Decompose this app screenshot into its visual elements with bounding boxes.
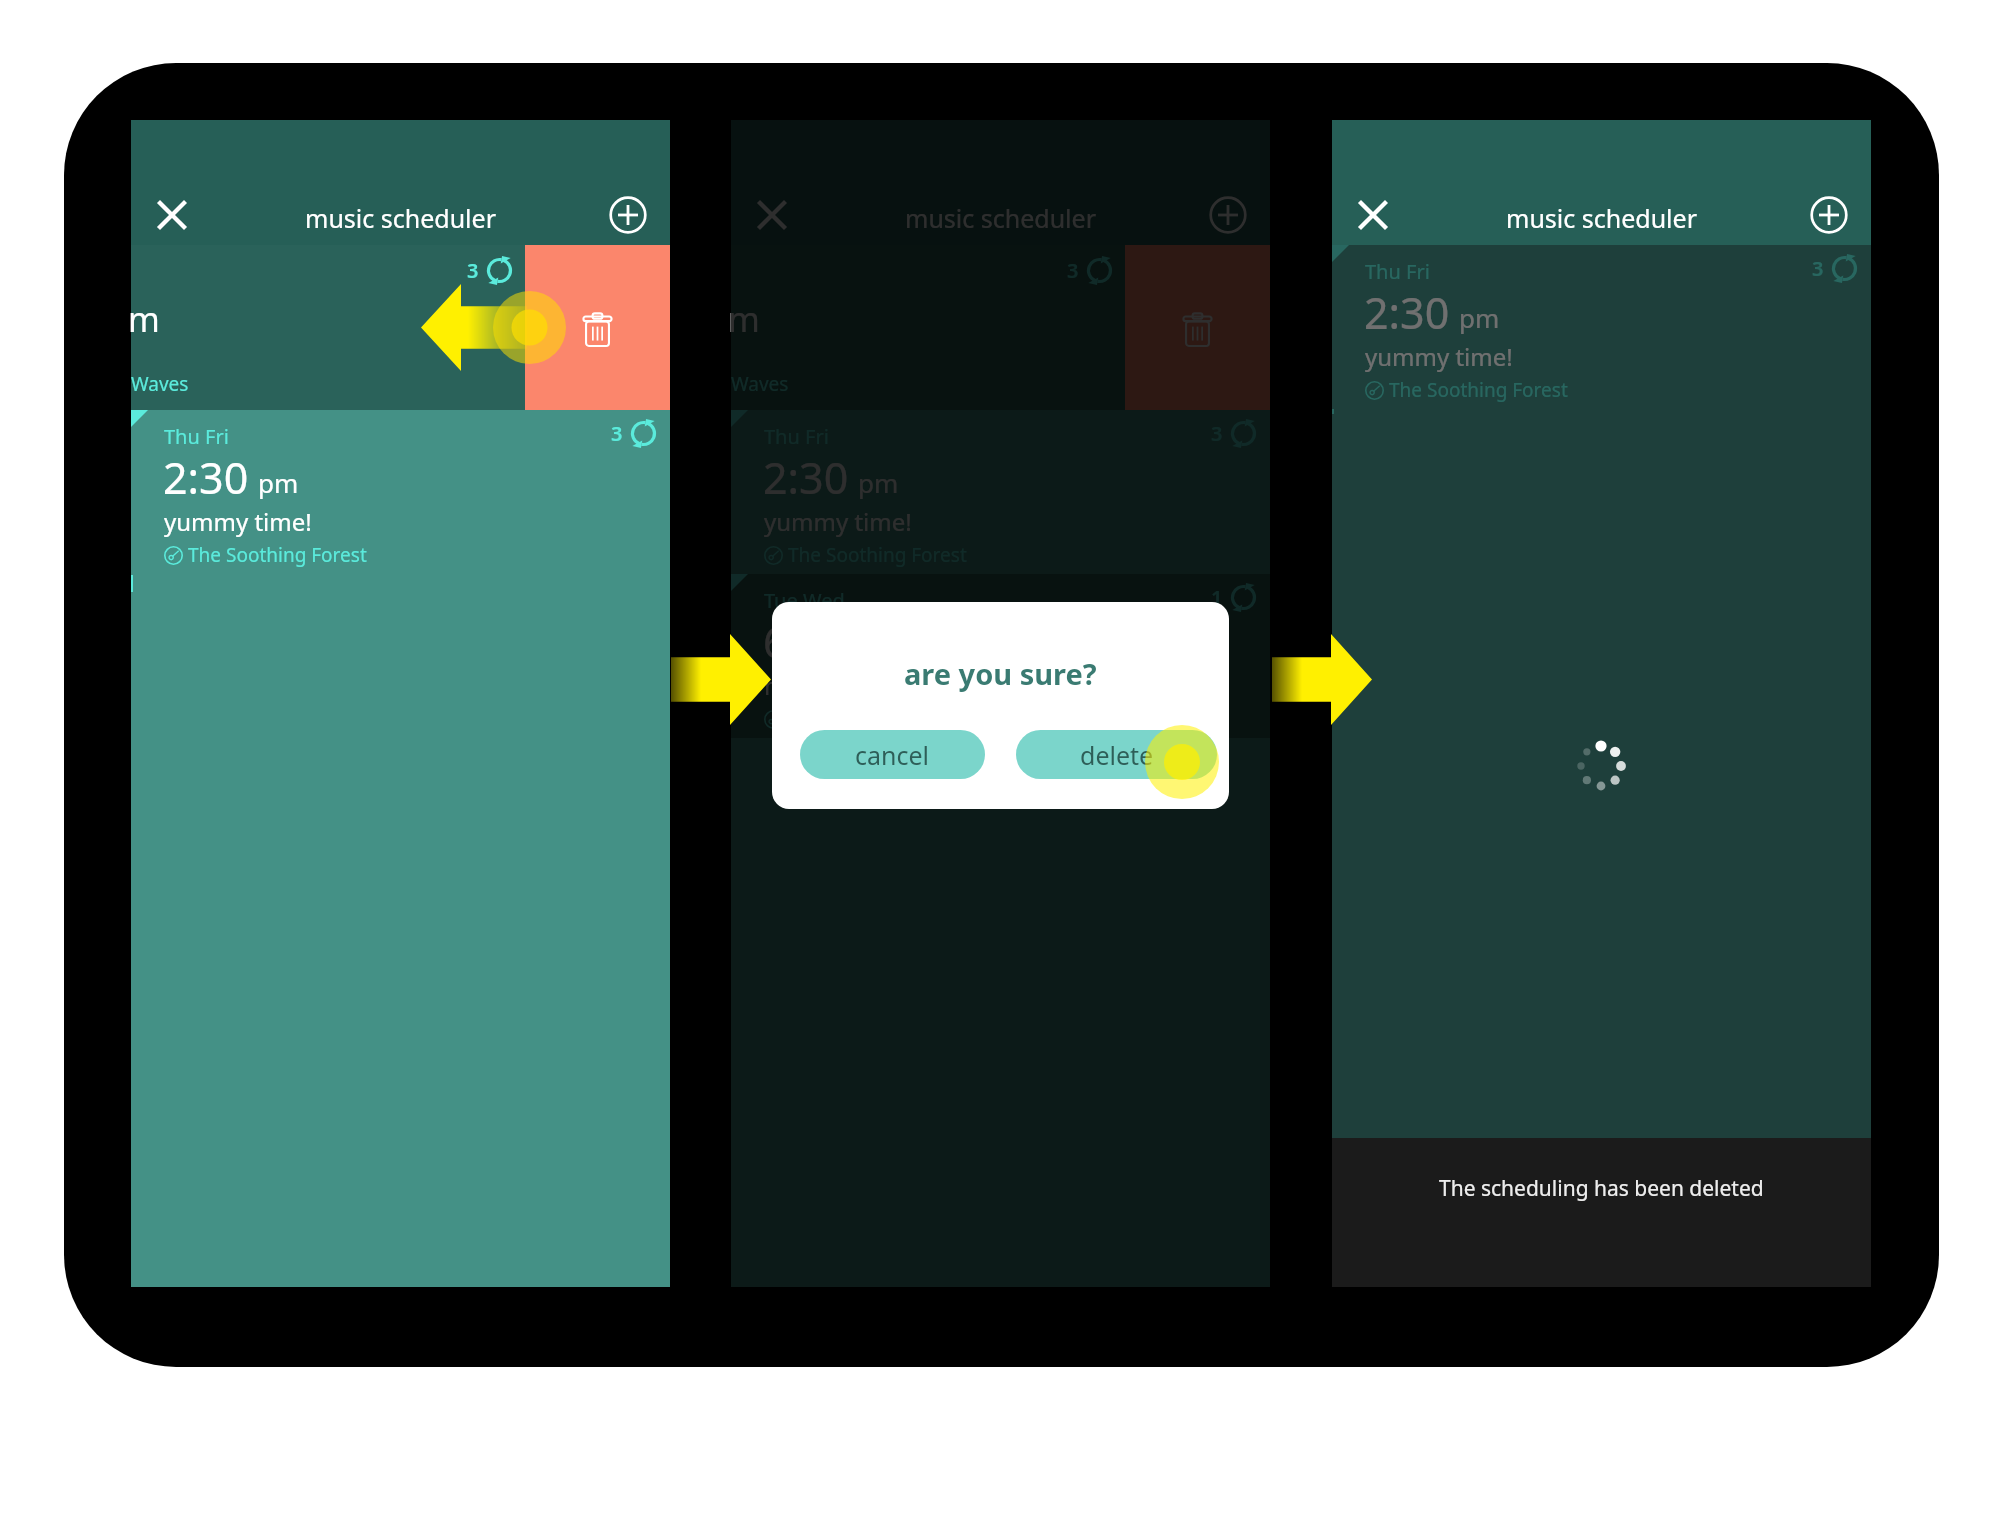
staticText: yummy time!: [764, 505, 912, 538]
button[interactable]: Thu Fri: [131, 410, 670, 574]
staticText: 6:45: [763, 612, 849, 671]
staticText: 3: [611, 420, 623, 447]
staticText: 3: [467, 257, 479, 284]
button[interactable]: delete: [1016, 730, 1217, 779]
button[interactable]: Add schedule: [1800, 186, 1858, 244]
staticText: music scheduler: [305, 201, 496, 235]
staticText: m: [728, 296, 760, 342]
staticText: music scheduler: [905, 201, 1096, 235]
staticText: The Soothing Forest: [788, 542, 967, 568]
button[interactable]: Thu Fri: [1332, 245, 1871, 409]
staticText: Thu Fri: [1365, 258, 1430, 285]
staticText: 3: [1812, 255, 1824, 282]
staticText: pm: [1459, 300, 1500, 335]
staticText: cancel: [855, 738, 930, 772]
button[interactable]: Close: [145, 188, 199, 242]
button[interactable]: Add schedule: [1199, 186, 1257, 244]
staticText: pm: [858, 465, 899, 500]
staticText: The Soothing Forest: [188, 542, 367, 568]
staticText: Lake Waves: [788, 706, 892, 732]
staticText: 2:30: [163, 448, 249, 507]
staticText: Waves: [131, 371, 189, 397]
button[interactable]: Thu Fri: [731, 410, 1270, 574]
button[interactable]: Close: [1346, 188, 1400, 242]
staticText: The Soothing Forest: [1389, 377, 1568, 403]
button[interactable]: Delete: [1125, 245, 1270, 410]
staticText: yummy time!: [1365, 340, 1513, 373]
staticText: delete: [1080, 738, 1154, 772]
button[interactable]: Tue Wed: [731, 574, 1270, 738]
staticText: 2:30: [1364, 283, 1450, 342]
staticText: The scheduling has been deleted: [1439, 1174, 1764, 1203]
staticText: Tue Wed: [764, 587, 845, 614]
button[interactable]: Delete: [525, 245, 670, 410]
staticText: yummy time!: [164, 505, 312, 538]
staticText: 1: [1211, 584, 1223, 611]
staticText: 3: [1067, 257, 1079, 284]
staticText: pm: [258, 465, 299, 500]
staticText: m: [128, 296, 160, 342]
button[interactable]: cancel: [800, 730, 985, 779]
staticText: morning walk: [764, 669, 920, 702]
staticText: 2:30: [763, 448, 849, 507]
staticText: 3: [1211, 420, 1223, 447]
staticText: music scheduler: [1506, 201, 1697, 235]
button[interactable]: Add schedule: [599, 186, 657, 244]
staticText: are you sure?: [904, 654, 1097, 693]
staticText: Thu Fri: [164, 423, 229, 450]
staticText: Waves: [731, 371, 789, 397]
button[interactable]: Close: [745, 188, 799, 242]
staticText: Thu Fri: [764, 423, 829, 450]
